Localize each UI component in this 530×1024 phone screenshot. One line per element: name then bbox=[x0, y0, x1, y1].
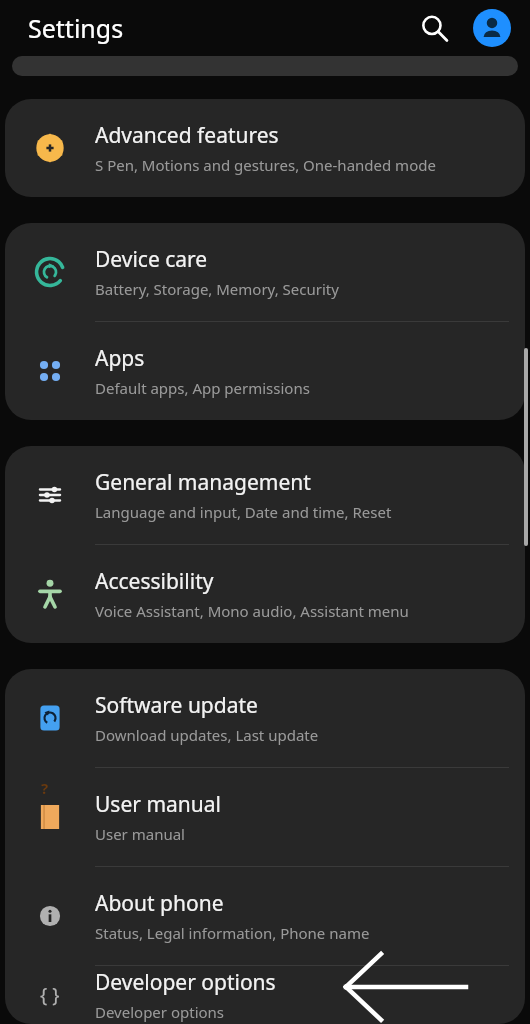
staticText: Developer options bbox=[95, 968, 276, 997]
staticText: Device care bbox=[95, 245, 208, 274]
button[interactable]: Account bbox=[473, 9, 511, 47]
button[interactable]: Accessibility bbox=[5, 545, 525, 643]
staticText: Voice Assistant, Mono audio, Assistant m… bbox=[95, 601, 409, 621]
staticText: User manual bbox=[95, 824, 185, 844]
button[interactable]: Search bbox=[412, 6, 456, 50]
button[interactable]: Software update bbox=[5, 669, 525, 767]
staticText: Battery, Storage, Memory, Security bbox=[95, 279, 339, 299]
button[interactable]: Device care bbox=[5, 223, 525, 321]
staticText: Apps bbox=[95, 344, 145, 373]
button[interactable]: User manual bbox=[5, 768, 525, 866]
button[interactable]: { } bbox=[5, 966, 525, 1024]
button[interactable]: Advanced features bbox=[5, 99, 525, 197]
button[interactable]: General management bbox=[5, 446, 525, 544]
staticText: Download updates, Last update bbox=[95, 725, 319, 745]
staticText: Status, Legal information, Phone name bbox=[95, 923, 370, 943]
staticText: Default apps, App permissions bbox=[95, 378, 310, 398]
button[interactable]: Apps bbox=[5, 322, 525, 420]
staticText: Software update bbox=[95, 691, 258, 720]
staticText: General management bbox=[95, 468, 311, 497]
staticText: Settings bbox=[28, 11, 124, 45]
staticText: Language and input, Date and time, Reset bbox=[95, 502, 392, 522]
staticText: Developer options bbox=[95, 1002, 225, 1022]
button[interactable]: About phone bbox=[5, 867, 525, 965]
staticText: Advanced features bbox=[95, 121, 279, 150]
staticText: Accessibility bbox=[95, 567, 214, 596]
staticText: About phone bbox=[95, 889, 224, 918]
button[interactable] bbox=[12, 56, 518, 76]
staticText: S Pen, Motions and gestures, One-handed … bbox=[95, 155, 436, 175]
staticText: ? bbox=[41, 778, 49, 798]
staticText: { } bbox=[40, 982, 60, 1008]
staticText: User manual bbox=[95, 790, 221, 819]
